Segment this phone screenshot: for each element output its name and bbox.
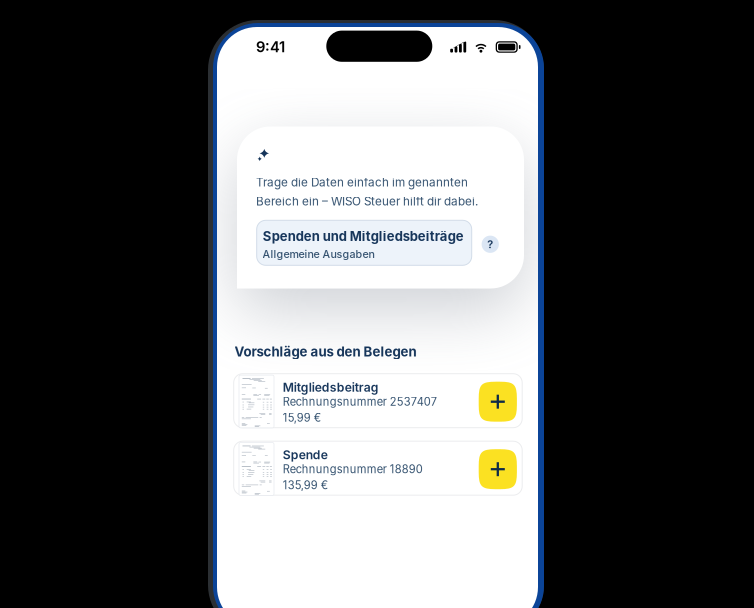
staticText: Allgemeine Ausgaben <box>263 248 375 261</box>
staticText: 9:41 <box>256 38 285 56</box>
staticText: 135,99 € <box>283 478 328 492</box>
staticText: Rechnungsnummer 2537407 <box>283 395 437 408</box>
staticText: ? <box>487 238 493 251</box>
staticText: Trage die Daten einfach im genannten <box>256 175 468 189</box>
button[interactable]: Spenden und Mitgliedsbeiträge <box>257 220 472 266</box>
staticText: 15,99 € <box>283 411 321 424</box>
button[interactable]: Spende <box>234 441 522 495</box>
staticText: Rechnungsnummer 18890 <box>283 463 423 476</box>
staticText: Spenden und Mitgliedsbeiträge <box>263 228 464 244</box>
button[interactable]: Hilfe <box>482 236 499 253</box>
staticText: Mitgliedsbeitrag <box>283 380 379 395</box>
button[interactable]: Mitgliedsbeitrag <box>234 374 522 428</box>
staticText: Vorschläge aus den Belegen <box>234 344 416 360</box>
staticText: Bereich ein – WISO Steuer hilft dir dabe… <box>256 194 478 208</box>
staticText: Spende <box>283 447 328 462</box>
